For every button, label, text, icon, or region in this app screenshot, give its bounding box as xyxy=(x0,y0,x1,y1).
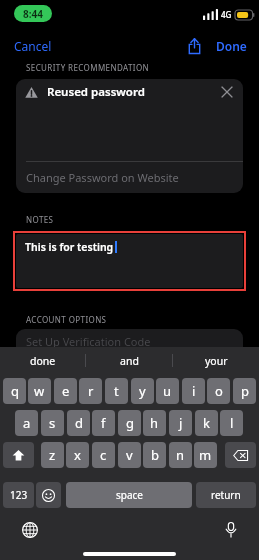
button[interactable]: e xyxy=(54,378,77,404)
staticText: return xyxy=(211,488,241,502)
staticText: d xyxy=(75,414,83,432)
button[interactable]: Set Up Verification Code xyxy=(16,329,243,351)
staticText: space xyxy=(116,488,143,502)
button[interactable]: g xyxy=(118,410,141,436)
staticText: Reused password xyxy=(47,84,145,100)
button[interactable]: Dismiss xyxy=(219,84,235,100)
button[interactable]: done xyxy=(0,347,85,374)
staticText: m xyxy=(199,446,212,464)
staticText: v xyxy=(126,446,133,464)
staticText: Cancel xyxy=(14,38,52,54)
staticText: i xyxy=(192,382,196,400)
staticText: p xyxy=(241,382,249,400)
button[interactable]: Backspace xyxy=(225,442,256,468)
button[interactable]: j xyxy=(169,410,192,436)
staticText: q xyxy=(11,382,19,400)
button[interactable]: v xyxy=(118,442,141,468)
button[interactable]: space xyxy=(66,482,192,508)
staticText: j xyxy=(179,414,183,432)
staticText: n xyxy=(176,446,185,464)
button[interactable]: a xyxy=(15,410,38,436)
staticText: Done xyxy=(216,38,247,54)
staticText: x xyxy=(74,446,81,464)
button[interactable]: d xyxy=(67,410,90,436)
button[interactable]: m xyxy=(194,442,217,468)
staticText: c xyxy=(100,446,107,464)
button[interactable]: Dictation xyxy=(222,519,240,541)
staticText: r xyxy=(88,382,94,400)
staticText: your xyxy=(205,354,228,368)
button[interactable]: Change keyboard xyxy=(19,519,41,541)
button[interactable]: q xyxy=(3,378,26,404)
staticText: NOTES xyxy=(26,214,54,225)
button[interactable]: return xyxy=(196,482,256,508)
staticText: a xyxy=(23,414,31,432)
staticText: k xyxy=(203,414,210,432)
button[interactable]: r xyxy=(79,378,102,404)
staticText: g xyxy=(126,414,134,432)
button[interactable]: h xyxy=(143,410,166,436)
staticText: s xyxy=(49,414,56,432)
staticText: y xyxy=(139,382,146,400)
staticText: t xyxy=(114,382,119,400)
button[interactable]: l xyxy=(220,410,243,436)
button[interactable]: This is for testing xyxy=(16,234,243,288)
staticText: u xyxy=(163,382,172,400)
button[interactable]: and xyxy=(86,347,172,374)
button[interactable]: Share xyxy=(184,34,205,58)
staticText: and xyxy=(120,354,139,368)
button[interactable]: x xyxy=(66,442,89,468)
staticText: 8:44 xyxy=(23,7,43,21)
button[interactable]: your xyxy=(173,347,259,374)
staticText: f xyxy=(101,414,106,432)
button[interactable]: o xyxy=(207,378,230,404)
staticText: l xyxy=(230,414,234,432)
staticText: This is for testing xyxy=(25,240,114,254)
button[interactable]: 123 xyxy=(3,482,34,508)
staticText: b xyxy=(151,446,159,464)
button[interactable]: Emoji xyxy=(36,482,61,508)
button[interactable]: y xyxy=(131,378,154,404)
staticText: Change Password on Website xyxy=(26,170,179,185)
staticText: 123 xyxy=(10,488,28,502)
button[interactable]: c xyxy=(92,442,115,468)
button[interactable]: w xyxy=(28,378,51,404)
button[interactable]: f xyxy=(92,410,115,436)
button[interactable]: s xyxy=(41,410,64,436)
button[interactable]: Change Password on Website xyxy=(16,162,243,193)
staticText: z xyxy=(49,446,56,464)
staticText: o xyxy=(215,382,223,400)
button[interactable]: Done xyxy=(212,35,251,57)
button[interactable]: Cancel xyxy=(8,35,58,57)
button[interactable]: n xyxy=(169,442,192,468)
staticText: 4G xyxy=(221,9,232,20)
staticText: w xyxy=(34,382,45,400)
staticText: Set Up Verification Code xyxy=(26,334,151,349)
staticText: h xyxy=(150,414,159,432)
staticText: done xyxy=(30,354,56,368)
button[interactable]: k xyxy=(195,410,218,436)
button[interactable]: u xyxy=(156,378,179,404)
button[interactable]: t xyxy=(105,378,128,404)
button[interactable]: p xyxy=(233,378,256,404)
staticText: e xyxy=(62,382,70,400)
staticText: ACCOUNT OPTIONS xyxy=(26,314,107,325)
button[interactable]: z xyxy=(41,442,64,468)
button[interactable]: Shift xyxy=(3,442,34,468)
button[interactable]: b xyxy=(143,442,166,468)
button[interactable]: i xyxy=(182,378,205,404)
staticText: SECURITY RECOMMENDATION xyxy=(26,62,150,73)
